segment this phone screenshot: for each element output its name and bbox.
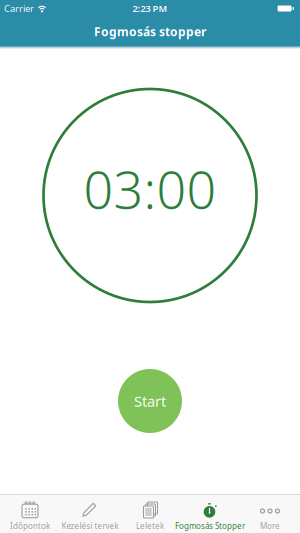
staticText: Fogmosás stopper — [94, 23, 206, 39]
staticText: Leletek — [136, 520, 164, 531]
staticText: Fogmosás Stopper — [175, 520, 245, 531]
staticText: Carrier — [4, 2, 34, 15]
staticText: More — [260, 520, 280, 531]
staticText: Időpontok — [10, 520, 50, 531]
button[interactable]: Start — [118, 369, 182, 433]
button[interactable]: Leletek — [120, 495, 180, 533]
staticText: 2:23 PM — [132, 2, 167, 15]
staticText: Start — [134, 391, 166, 411]
button[interactable]: More — [240, 495, 300, 533]
button[interactable]: Kezelési tervek — [60, 495, 120, 533]
button[interactable]: Időpontok — [0, 495, 60, 533]
button[interactable]: Fogmosás Stopper — [180, 495, 240, 533]
staticText: Kezelési tervek — [61, 520, 118, 531]
staticText: 03:00 — [83, 154, 216, 223]
